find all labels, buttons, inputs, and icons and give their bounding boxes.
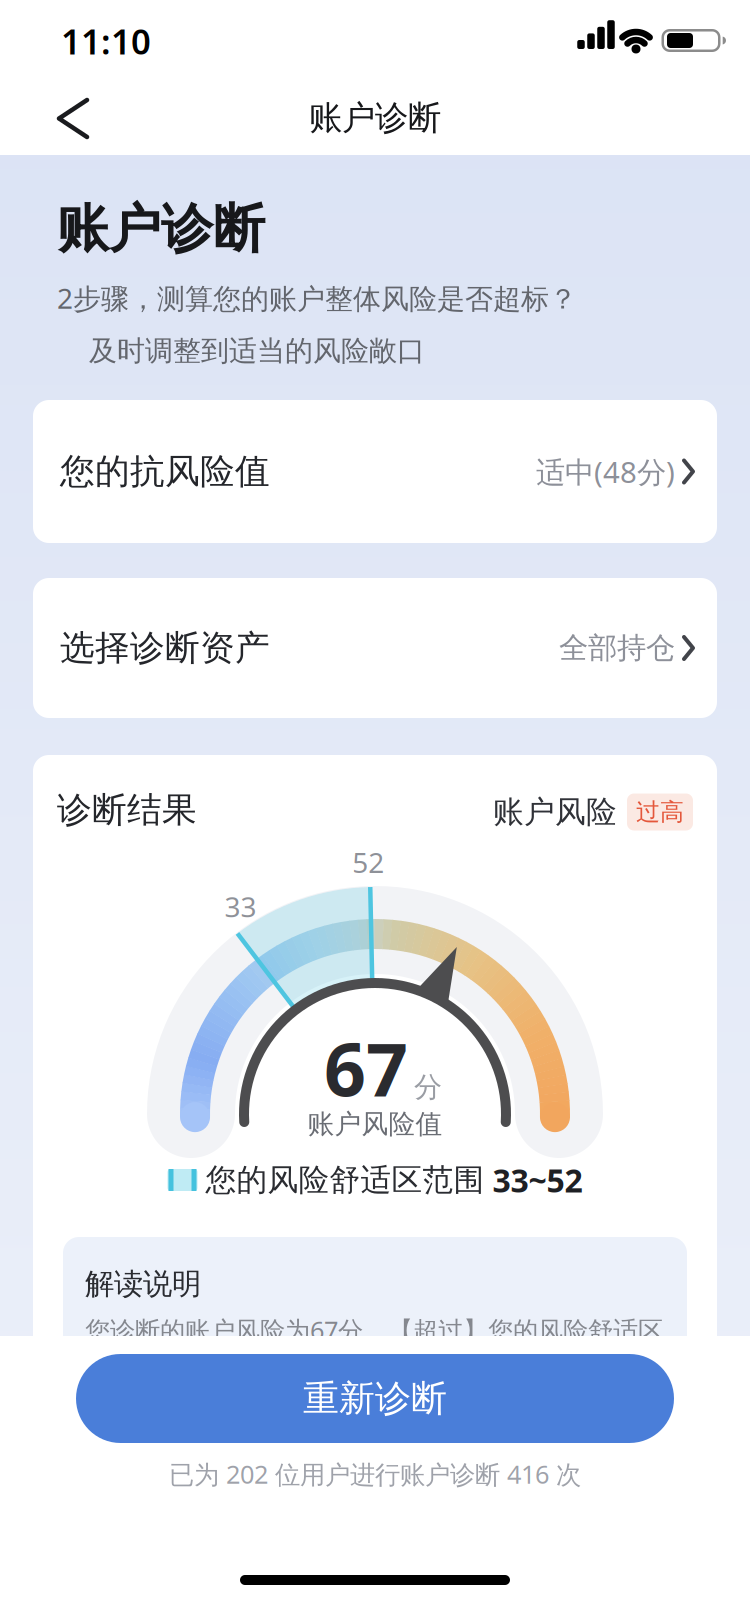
- staticText: 分: [414, 1070, 442, 1104]
- staticText: 33: [224, 888, 256, 925]
- staticText: 重新诊断: [303, 1376, 447, 1421]
- button[interactable]: [15, 83, 125, 153]
- staticText: 全部持仓: [559, 630, 675, 666]
- button[interactable]: 重新诊断: [76, 1354, 674, 1443]
- staticText: 2步骤，测算您的账户整体风险是否超标？: [57, 279, 577, 317]
- staticText: 11:10: [61, 18, 151, 64]
- staticText: 您的风险舒适区范围: [205, 1161, 484, 1199]
- staticText: 适中(48分): [536, 452, 675, 491]
- staticText: 67: [324, 1019, 408, 1117]
- staticText: 解读说明: [85, 1266, 201, 1302]
- staticText: 账户诊断: [57, 197, 265, 261]
- staticText: 已为 202 位用户进行账户诊断 416 次: [169, 1457, 581, 1491]
- staticText: 33~52: [492, 1159, 582, 1201]
- staticText: 52: [352, 843, 384, 881]
- staticText: 您诊断的账户风险为67分，【超过】您的风险舒适区: [85, 1313, 663, 1347]
- staticText: 账户风险: [493, 793, 617, 831]
- button[interactable]: 选择诊断资产: [33, 578, 717, 718]
- staticText: 您的抗风险值: [60, 450, 270, 493]
- staticText: 账户诊断: [309, 97, 441, 138]
- button[interactable]: 您的抗风险值: [33, 400, 717, 543]
- button[interactable]: 过高: [627, 793, 693, 830]
- staticText: 选择诊断资产: [60, 627, 270, 669]
- staticText: 账户风险值: [307, 1108, 442, 1140]
- staticText: 诊断结果: [57, 789, 197, 831]
- staticText: 过高: [636, 797, 684, 827]
- staticText: 及时调整到适当的风险敞口: [89, 334, 425, 368]
